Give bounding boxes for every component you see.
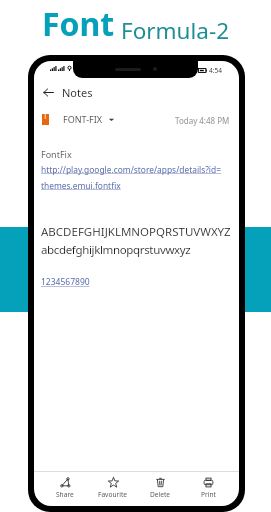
- staticText: FONT-FIX: [63, 113, 103, 125]
- staticText: ABCDEFGHIJKLMNOPQRSTUVWXYZ: [41, 224, 231, 240]
- staticText: Font: [42, 2, 115, 46]
- button[interactable]: Favourite: [92, 474, 134, 501]
- button[interactable]: Print: [187, 474, 229, 501]
- staticText: FontFix: [41, 148, 72, 160]
- staticText: Favourite: [98, 490, 128, 499]
- staticText: 1234567890: [41, 276, 90, 288]
- button[interactable]: Delete: [139, 474, 181, 501]
- staticText: Delete: [150, 490, 171, 499]
- staticText: Print: [201, 490, 216, 499]
- button[interactable]: Back: [39, 83, 57, 101]
- button[interactable]: FONT-FIX: [42, 113, 115, 125]
- staticText: Notes: [62, 85, 93, 100]
- staticText: http://play.google.com/store/apps/detail…: [41, 164, 221, 175]
- staticText: %: [192, 67, 197, 74]
- staticText: Today 4:48 PM: [175, 115, 230, 126]
- staticText: abcdefghijklmnopqrstuvwxyz: [41, 242, 191, 258]
- staticText: themes.emui.fontfix: [41, 180, 121, 191]
- staticText: 4:54: [209, 66, 222, 75]
- staticText: Formula-2: [121, 15, 230, 46]
- staticText: Share: [56, 490, 74, 499]
- button[interactable]: Share: [44, 474, 86, 501]
